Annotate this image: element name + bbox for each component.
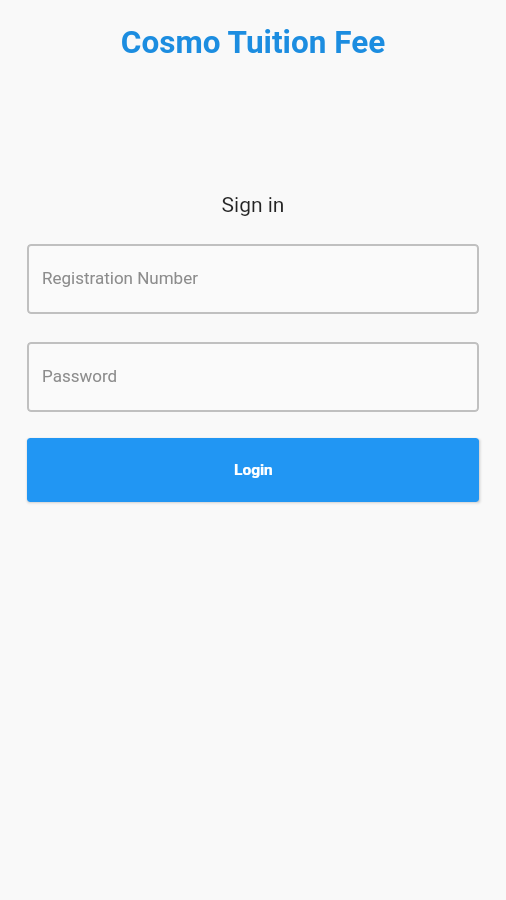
staticText: Cosmo Tuition Fee — [0, 24, 506, 61]
button[interactable]: Password — [27, 342, 479, 412]
staticText: Sign in — [0, 193, 506, 218]
staticText: Password — [42, 366, 118, 386]
staticText: Login — [234, 461, 273, 479]
staticText: Registration Number — [42, 268, 198, 288]
button[interactable]: Registration Number — [27, 244, 479, 314]
button[interactable]: Login — [27, 438, 479, 502]
